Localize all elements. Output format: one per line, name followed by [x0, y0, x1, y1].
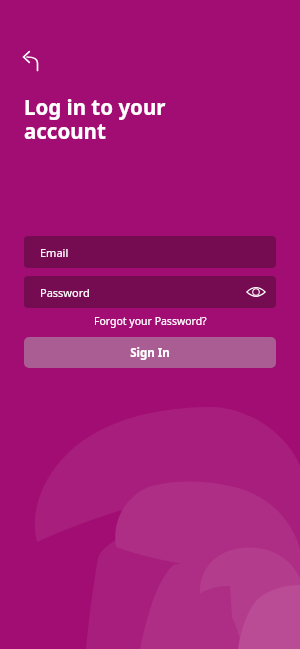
button[interactable]: Password [24, 276, 276, 308]
button[interactable]: Forgot your Password? [94, 314, 207, 328]
button[interactable]: Sign In [24, 337, 276, 368]
staticText: Sign In [130, 345, 170, 361]
staticText: Forgot your Password? [94, 314, 207, 328]
button[interactable]: Email [24, 236, 276, 268]
staticText: Email [40, 245, 69, 260]
button[interactable] [11, 44, 47, 80]
staticText: Log in to your account [24, 93, 166, 145]
staticText: Password [40, 285, 90, 300]
button[interactable] [244, 280, 268, 304]
